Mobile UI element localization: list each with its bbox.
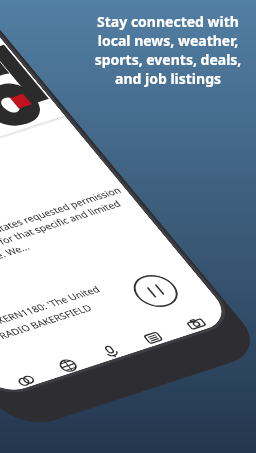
button[interactable] xyxy=(179,312,212,334)
staticText: KERN RADIO BAKERSFIELD xyxy=(0,302,95,350)
button[interactable] xyxy=(124,270,187,312)
button[interactable] xyxy=(7,368,41,390)
staticText: Stay connected with local news, weather,… xyxy=(86,12,250,88)
staticText: Reuters: 'The United States requested pe… xyxy=(0,183,147,286)
button[interactable] xyxy=(136,326,169,348)
button[interactable] xyxy=(93,340,127,362)
staticText: RT by @KERN1180: 'The United xyxy=(0,283,103,338)
button[interactable]: 96 xyxy=(0,0,65,192)
staticText: 96 xyxy=(0,34,66,171)
button[interactable] xyxy=(50,354,84,376)
